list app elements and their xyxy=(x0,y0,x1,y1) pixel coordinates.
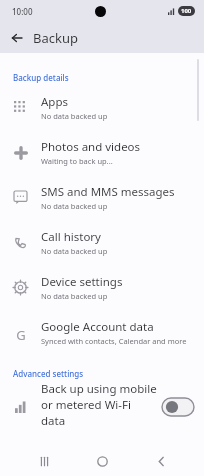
staticText: or metered Wi-Fi data xyxy=(41,397,158,429)
staticText: 10:00 xyxy=(12,6,33,17)
staticText: No data backed up xyxy=(41,246,108,256)
staticText: G xyxy=(16,326,26,340)
staticText: Call history xyxy=(41,229,101,245)
button[interactable]: Back xyxy=(6,27,28,49)
button[interactable]: Back xyxy=(146,446,176,476)
staticText: No data backed up xyxy=(41,201,108,211)
button[interactable]: Back up using mobile xyxy=(0,381,204,433)
staticText: Device settings xyxy=(41,274,123,290)
staticText: 100 xyxy=(181,7,192,15)
button[interactable]: SMS and MMS messages xyxy=(0,175,204,220)
staticText: Back up using mobile xyxy=(41,381,157,397)
button[interactable]: Apps xyxy=(0,85,204,130)
button[interactable]: Back up using mobile or metered Wi-Fi da… xyxy=(162,398,194,416)
button[interactable]: Photos and videos xyxy=(0,130,204,175)
staticText: Photos and videos xyxy=(41,139,141,155)
staticText: No data backed up xyxy=(41,111,108,121)
button[interactable]: Recents xyxy=(29,446,59,476)
staticText: No data backed up xyxy=(41,291,108,301)
staticText: Apps xyxy=(41,94,69,110)
staticText: Backup details xyxy=(13,72,69,83)
button[interactable]: Device settings xyxy=(0,265,204,310)
staticText: Synced with contacts, Calendar and more xyxy=(41,336,187,346)
button[interactable]: Call history xyxy=(0,220,204,265)
button[interactable]: Home xyxy=(87,446,117,476)
staticText: SMS and MMS messages xyxy=(41,184,175,200)
button[interactable]: G xyxy=(0,310,204,355)
staticText: Backup xyxy=(33,29,78,47)
staticText: Google Account data xyxy=(41,319,154,335)
staticText: Advanced settings xyxy=(13,368,84,379)
staticText: Waiting to back up... xyxy=(41,156,113,166)
